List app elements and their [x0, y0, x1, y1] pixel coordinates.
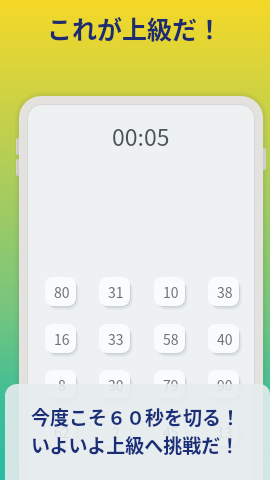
staticText: 38: [217, 282, 233, 302]
staticText: 79: [163, 375, 179, 395]
staticText: 10: [163, 282, 179, 302]
button[interactable]: 16: [45, 324, 76, 353]
staticText: 31: [108, 282, 124, 302]
staticText: 8: [58, 375, 66, 395]
staticText: 00:05: [112, 119, 170, 152]
button[interactable]: 90: [208, 370, 239, 399]
staticText: 40: [217, 329, 233, 349]
staticText: 62: [54, 422, 70, 442]
staticText: 13: [217, 422, 233, 442]
staticText: 33: [108, 329, 124, 349]
button[interactable]: 今度こそ６０秒を切る！: [5, 384, 270, 480]
button[interactable]: 10: [154, 277, 185, 306]
button[interactable]: 8: [45, 370, 76, 399]
button[interactable]: 62: [45, 417, 76, 446]
staticText: 今度こそ６０秒を切る！: [31, 403, 241, 431]
button[interactable]: 58: [154, 324, 185, 353]
button[interactable]: 40: [208, 324, 239, 353]
staticText: 30: [108, 375, 124, 395]
staticText: 45: [163, 422, 179, 442]
button[interactable]: 13: [208, 417, 239, 446]
staticText: これが上級だ！: [47, 10, 223, 46]
button[interactable]: 33: [99, 324, 130, 353]
staticText: いよいよ上級へ挑戦だ！: [31, 431, 240, 459]
staticText: 16: [54, 329, 70, 349]
staticText: 90: [217, 375, 233, 395]
staticText: 58: [163, 329, 179, 349]
button[interactable]: 31: [99, 277, 130, 306]
button[interactable]: 2: [99, 417, 130, 446]
button[interactable]: 38: [208, 277, 239, 306]
staticText: 2: [112, 422, 120, 442]
button[interactable]: 45: [154, 417, 185, 446]
staticText: 80: [54, 282, 70, 302]
button[interactable]: 80: [45, 277, 76, 306]
button[interactable]: 30: [99, 370, 130, 399]
button[interactable]: 79: [154, 370, 185, 399]
